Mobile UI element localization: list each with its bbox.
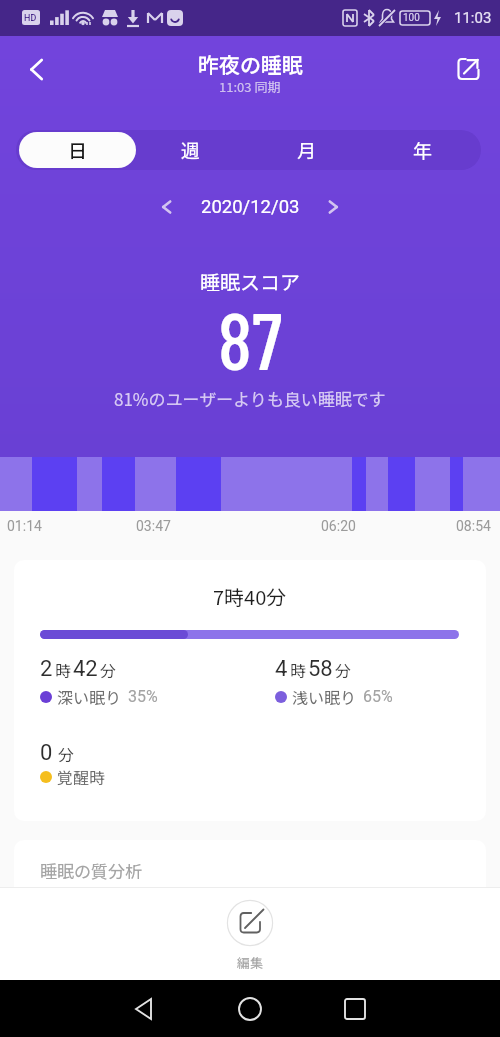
button[interactable]: Next day [318,191,350,223]
staticText: 0 [40,740,53,766]
staticText: 時 [290,658,307,681]
staticText: 深い眠り [57,685,122,708]
button[interactable]: 月 [249,130,365,170]
staticText: 浅い眠り [292,685,357,708]
staticText: 時 [55,658,72,681]
staticText: 日 [68,136,88,164]
staticText: 35% [128,687,158,706]
staticText: 06:20 [321,518,356,534]
staticText: 分 [58,742,75,765]
button[interactable]: Edit [210,900,290,980]
staticText: 100 [403,12,420,24]
button[interactable]: 睡眠の質分析 [14,840,486,940]
staticText: 覚醒時 [57,765,106,788]
staticText: 08:54 [456,518,491,534]
staticText: HD [24,13,37,24]
staticText: 編集 [237,953,264,972]
staticText: 42 [73,656,98,682]
staticText: 睡眠スコア [200,267,300,296]
staticText: 11:03 [454,9,492,27]
staticText: 睡眠の質分析 [40,858,142,883]
staticText: 7時40分 [213,582,287,611]
staticText: 2 [40,656,53,682]
staticText: 58 [308,656,333,682]
button[interactable]: Back [16,52,54,90]
staticText: 03:47 [136,518,171,534]
button[interactable]: Home [226,985,274,1033]
staticText: 65% [363,687,393,706]
button[interactable]: Share [454,52,492,90]
staticText: 2020/12/03 [201,196,300,218]
staticText: 87 [218,291,282,386]
staticText: 週 [181,136,201,164]
button[interactable]: Recents [331,985,379,1033]
button[interactable]: 年 [365,130,481,170]
button[interactable]: Previous day [150,191,182,223]
staticText: 分 [100,658,117,681]
button[interactable]: 週 [133,130,249,170]
staticText: 4 [275,656,288,682]
staticText: 月 [297,136,317,164]
staticText: 昨夜の睡眠 [198,49,303,79]
staticText: 01:14 [7,518,42,534]
button[interactable]: 日 [16,130,133,170]
staticText: 81%のユーザーよりも良い睡眠です [114,386,386,411]
staticText: 11:03 同期 [219,77,281,96]
staticText: 年 [413,136,433,164]
button[interactable]: Back [121,985,169,1033]
staticText: 分 [335,658,352,681]
